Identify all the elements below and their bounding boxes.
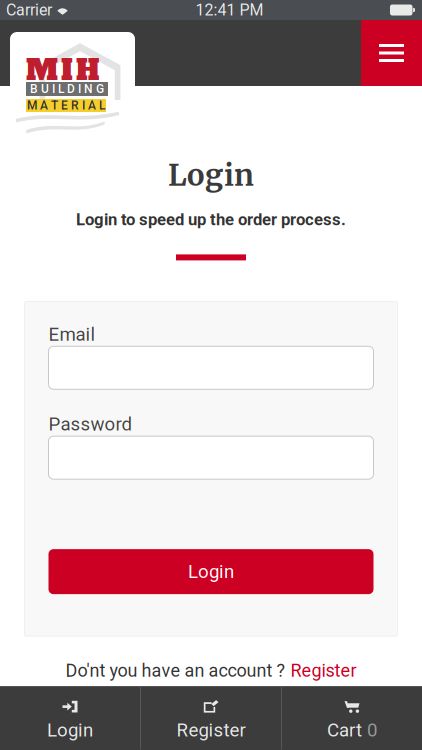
button[interactable]: Menu [361,20,422,86]
staticText: Login to speed up the order process. [76,210,346,229]
staticText: Do'nt you have an account ? [65,660,285,681]
button[interactable]: Login [0,686,140,750]
staticText: Carrier [6,1,52,19]
button[interactable]: Register [141,686,281,750]
button[interactable]: Register [290,660,356,681]
staticText: 12:41 PM [195,1,263,19]
staticText: Email [48,323,95,345]
staticText: Login [188,561,234,583]
button[interactable]: Login [48,549,373,594]
staticText: Password [48,413,132,435]
staticText: 0 [367,719,377,741]
staticText: Cart [327,719,362,741]
staticText: M I H [26,51,100,89]
button[interactable]: Cart [282,686,422,750]
staticText: Register [176,719,245,741]
staticText: Login [168,157,254,194]
staticText: M A T E R I A L [27,98,105,113]
staticText: B U I L D I N G [30,82,104,96]
staticText: Register [290,660,356,681]
staticText: Login [47,719,93,741]
